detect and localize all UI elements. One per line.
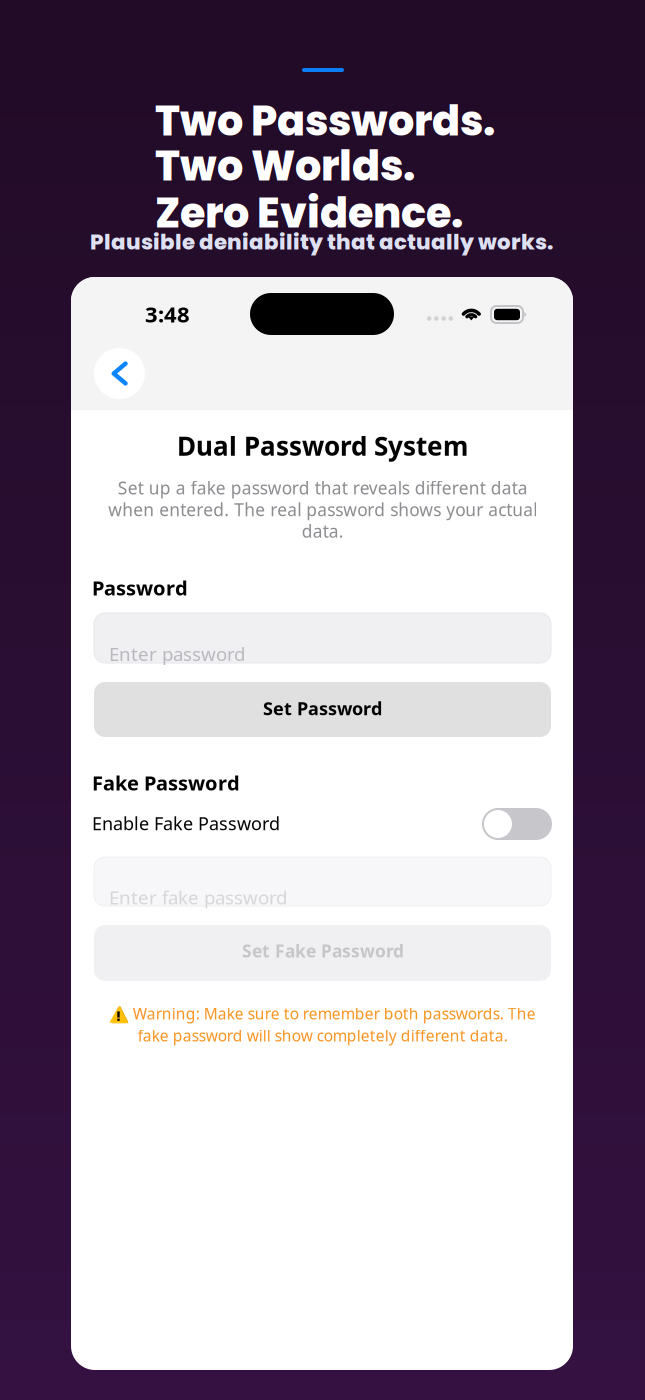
button[interactable]: Set Password xyxy=(94,682,551,737)
staticText: Dual Password System xyxy=(177,428,468,463)
staticText: Set up a fake password that reveals diff… xyxy=(108,476,537,543)
staticText: Two Worlds. xyxy=(155,137,415,195)
staticText: ⚠️ Warning: Make sure to remember both p… xyxy=(109,1003,535,1046)
staticText: Set Password xyxy=(263,696,382,720)
button[interactable]: Back xyxy=(94,348,145,399)
staticText: Set Fake Password xyxy=(242,939,404,963)
staticText: Password xyxy=(92,574,188,601)
staticText: Plausible deniability that actually work… xyxy=(90,227,553,257)
staticText: Zero Evidence. xyxy=(155,184,463,242)
staticText: Enter password xyxy=(109,641,245,666)
button[interactable]: Set Fake Password xyxy=(94,925,551,981)
staticText: Two Passwords. xyxy=(155,92,495,150)
staticText: Enter fake password xyxy=(109,884,287,910)
button[interactable]: Enable Fake Password xyxy=(482,808,552,840)
staticText: Enable Fake Password xyxy=(92,811,280,835)
staticText: Fake Password xyxy=(92,769,240,796)
staticText: 3:48 xyxy=(145,299,190,329)
